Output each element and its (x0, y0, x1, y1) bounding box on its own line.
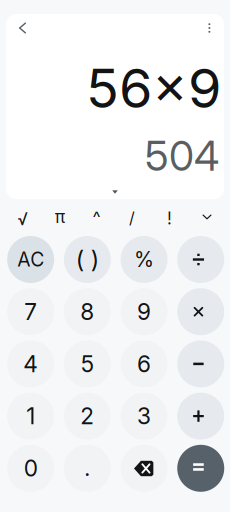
button[interactable]: Parentheses (59, 233, 116, 286)
staticText: 9 (137, 298, 151, 325)
staticText: ( ) (76, 245, 99, 274)
staticText: 7 (24, 298, 37, 325)
button[interactable]: Equals (172, 442, 229, 494)
staticText: ! (167, 208, 172, 228)
button[interactable]: Pi (46, 205, 74, 229)
button[interactable]: 0 (2, 442, 59, 494)
staticText: 6 (137, 350, 151, 378)
staticText: / (129, 208, 135, 227)
button[interactable]: Decimal point (59, 442, 116, 494)
button[interactable]: Collapse display (99, 186, 131, 198)
button[interactable]: 3 (116, 390, 172, 442)
staticText: AC (17, 248, 44, 271)
button[interactable]: 1 (2, 390, 59, 442)
button[interactable]: Back (9, 16, 35, 40)
button[interactable]: 5 (59, 338, 116, 390)
button[interactable]: Subtract (172, 338, 229, 390)
button[interactable]: 2 (59, 390, 116, 442)
button[interactable]: Add (172, 390, 229, 442)
staticText: 5 (81, 350, 94, 378)
staticText: 2 (80, 402, 94, 430)
button[interactable]: Multiply (172, 286, 229, 338)
button[interactable]: Factorial (155, 206, 183, 230)
staticText: 8 (80, 298, 94, 325)
staticText: ^ (92, 207, 100, 228)
button[interactable]: Divide (172, 233, 229, 286)
button[interactable]: Fraction (118, 206, 146, 230)
button[interactable]: 9 (116, 286, 172, 338)
staticText: 1 (26, 402, 35, 430)
button[interactable]: 4 (2, 338, 59, 390)
button[interactable]: Square root (8, 207, 36, 231)
staticText: 4 (23, 350, 38, 378)
staticText: 56×9 (86, 55, 221, 121)
button[interactable]: 8 (59, 286, 116, 338)
staticText: √ (17, 209, 27, 229)
button[interactable]: All clear (2, 233, 59, 286)
staticText: 0 (24, 455, 38, 482)
button[interactable]: Power (82, 206, 110, 230)
staticText: % (134, 247, 154, 272)
staticText: 3 (137, 402, 151, 430)
button[interactable]: More options (197, 16, 221, 40)
button[interactable]: 7 (2, 286, 59, 338)
button[interactable]: Percent (116, 233, 172, 286)
button[interactable]: More functions (193, 205, 221, 229)
button[interactable]: 6 (116, 338, 172, 390)
staticText: π (55, 206, 65, 227)
staticText: . (84, 455, 90, 481)
button[interactable]: Delete (116, 442, 172, 494)
staticText: 504 (145, 131, 219, 181)
